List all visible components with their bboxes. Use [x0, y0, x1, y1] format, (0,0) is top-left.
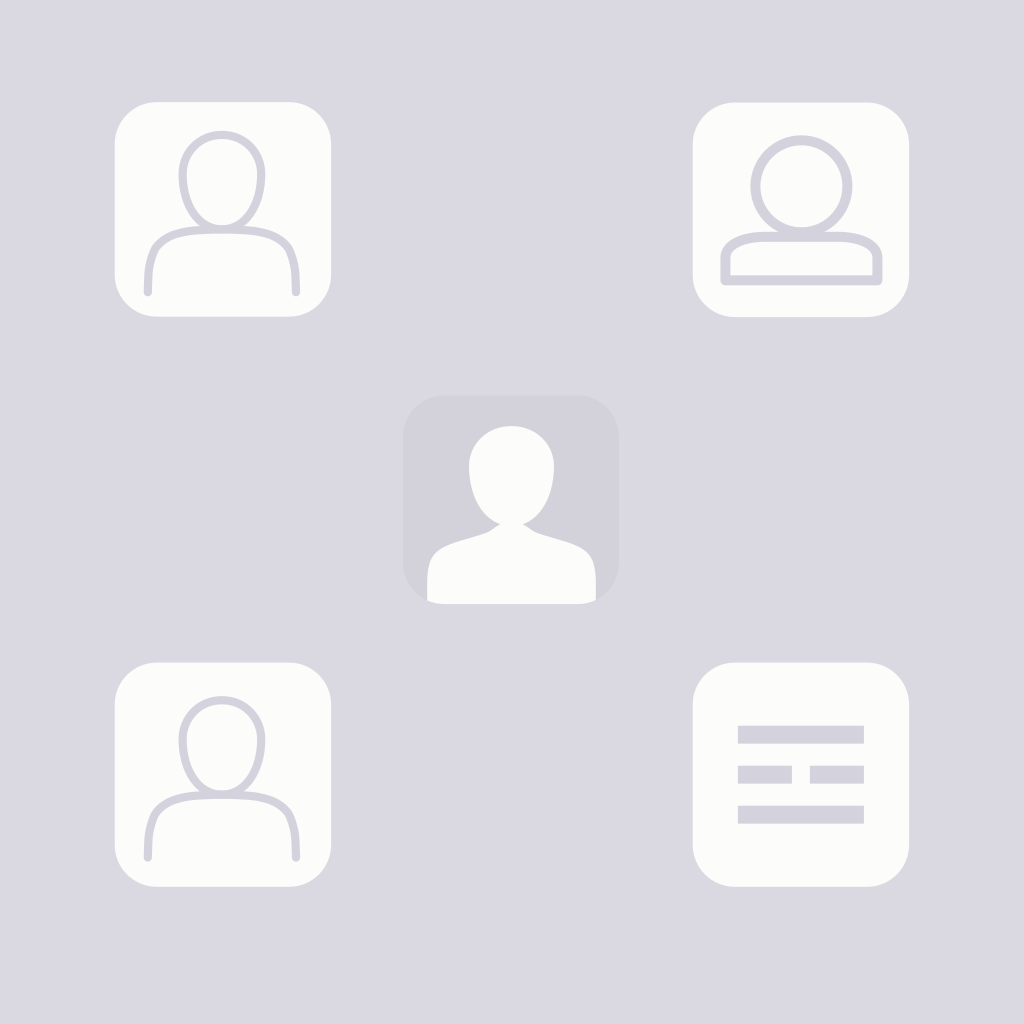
button[interactable]: Contact placeholder: [115, 663, 331, 887]
button[interactable]: Profile placeholder: [693, 103, 909, 317]
button[interactable]: Details placeholder: [693, 663, 909, 887]
button[interactable]: Selected profile: [403, 396, 619, 604]
button[interactable]: Contact placeholder: [115, 102, 331, 317]
